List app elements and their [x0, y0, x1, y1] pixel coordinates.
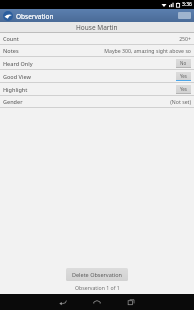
button[interactable]: Back [46, 294, 80, 310]
button[interactable]: No [176, 59, 191, 68]
staticText: Observation [16, 12, 54, 21]
staticText: No [180, 60, 187, 66]
staticText: 250+ [179, 35, 191, 42]
button[interactable]: Count [0, 33, 194, 45]
button[interactable]: Delete Observation [66, 268, 128, 281]
staticText: Yes [180, 86, 188, 92]
button[interactable]: Notes [0, 45, 194, 57]
staticText: Yes [180, 73, 188, 79]
staticText: Gender [3, 98, 23, 105]
staticText: (Not set) [170, 98, 191, 105]
button[interactable]: More options [178, 12, 191, 19]
staticText: Highlight [3, 86, 28, 93]
button[interactable]: Yes [176, 85, 191, 94]
button[interactable]: App logo [3, 11, 54, 21]
staticText: Delete Observation [72, 271, 122, 278]
button[interactable]: Heard Only [0, 57, 194, 70]
staticText: Count [3, 35, 19, 42]
button[interactable]: Recent apps [114, 294, 148, 310]
staticText: Good View [3, 73, 31, 80]
staticText: Notes [3, 47, 19, 54]
staticText: House Martin [76, 23, 118, 32]
button[interactable]: Good View [0, 70, 194, 83]
other: App logo [3, 11, 13, 21]
staticText: Heard Only [3, 60, 33, 67]
staticText: Observation 1 of 1 [75, 284, 120, 291]
button[interactable]: Yes [176, 72, 191, 81]
button[interactable]: Gender [0, 96, 194, 108]
button[interactable]: Home [80, 294, 114, 310]
staticText: 3:36 [182, 1, 192, 8]
button[interactable]: Highlight [0, 83, 194, 96]
staticText: Maybe 300, amazing sight above so [104, 47, 191, 54]
